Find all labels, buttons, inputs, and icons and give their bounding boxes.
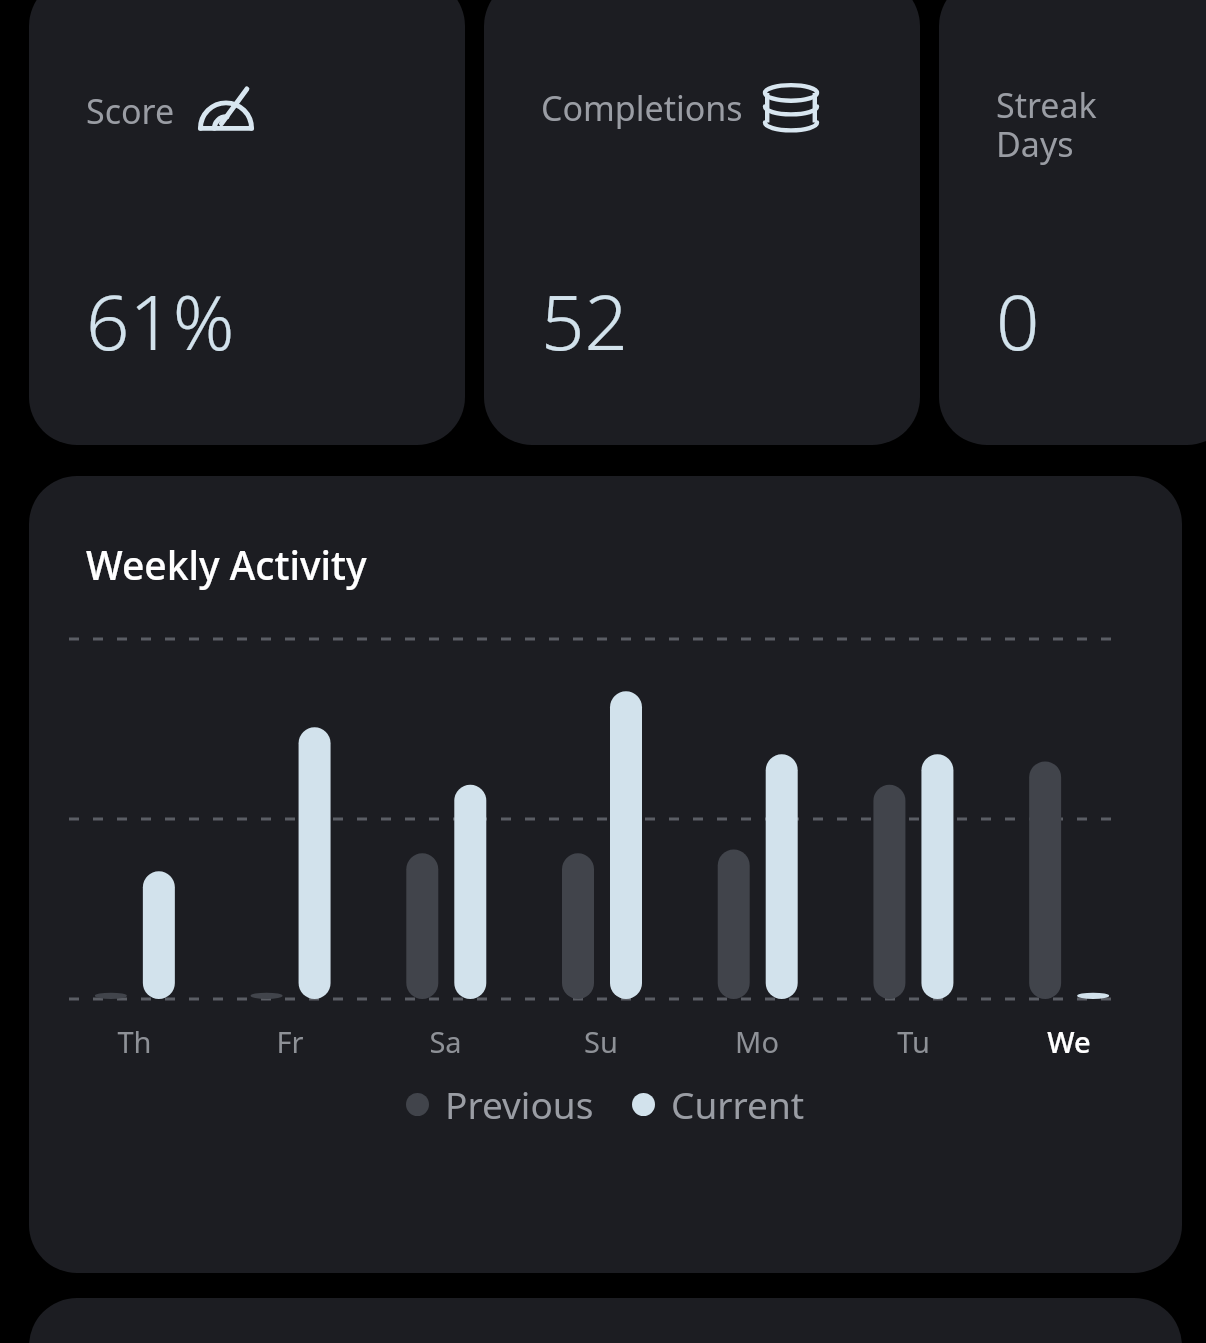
- staticText: 61%: [86, 269, 235, 373]
- button[interactable]: Weekly Activity: [29, 476, 1182, 1273]
- button[interactable]: Streak Days: [939, 0, 1206, 445]
- staticText: Score: [86, 88, 175, 134]
- button[interactable]: Completions: [484, 0, 920, 445]
- button[interactable]: Score: [29, 0, 465, 445]
- staticText: Streak Days: [996, 82, 1178, 167]
- other: Score meter: [197, 82, 255, 140]
- staticText: Tu: [897, 1022, 930, 1061]
- staticText: Fr: [276, 1022, 304, 1061]
- staticText: Sa: [429, 1022, 462, 1061]
- staticText: Th: [117, 1022, 152, 1061]
- staticText: We: [1047, 1022, 1091, 1061]
- other: Completions: [765, 82, 817, 134]
- staticText: Weekly Activity: [86, 538, 367, 591]
- staticText: 0: [996, 269, 1040, 373]
- button[interactable]: Current: [632, 1079, 805, 1129]
- staticText: Su: [584, 1022, 618, 1061]
- staticText: Mo: [735, 1022, 779, 1061]
- staticText: Completions: [541, 85, 743, 131]
- staticText: Current: [671, 1079, 805, 1129]
- button[interactable]: [29, 1298, 1182, 1343]
- staticText: 52: [541, 269, 628, 373]
- button[interactable]: Previous: [406, 1079, 594, 1129]
- staticText: Previous: [445, 1079, 594, 1129]
